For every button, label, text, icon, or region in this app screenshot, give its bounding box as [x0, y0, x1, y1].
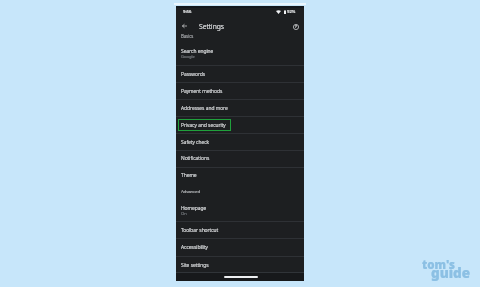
- staticText: Homepage: [181, 205, 207, 212]
- button[interactable]: Theme: [176, 167, 304, 184]
- staticText: Privacy and security: [181, 122, 226, 129]
- staticText: 92%: [287, 9, 296, 15]
- staticText: 9:56: [183, 9, 192, 15]
- staticText: Accessibility: [181, 244, 208, 251]
- staticText: tom's: [422, 257, 455, 273]
- button[interactable]: Notifications: [176, 150, 304, 167]
- staticText: Search engine: [181, 48, 214, 55]
- staticText: Google: [181, 54, 195, 60]
- button[interactable]: Payment methods: [176, 82, 304, 99]
- button[interactable]: Back: [178, 20, 190, 32]
- staticText: Basics: [181, 33, 194, 39]
- button[interactable]: Safety check: [176, 133, 304, 150]
- button[interactable]: Passwords: [176, 65, 304, 82]
- staticText: Site settings: [181, 262, 209, 269]
- button[interactable]: Site settings: [176, 256, 304, 271]
- staticText: ?: [295, 24, 297, 30]
- staticText: On: [181, 211, 187, 217]
- button[interactable]: Homepage: [176, 200, 304, 221]
- staticText: Toolbar shortcut: [181, 227, 219, 234]
- staticText: Advanced: [181, 188, 201, 194]
- button[interactable]: Addresses and more: [176, 99, 304, 116]
- staticText: Passwords: [181, 71, 206, 78]
- staticText: Notifications: [181, 155, 210, 162]
- staticText: Safety check: [181, 139, 210, 146]
- button[interactable]: Privacy and security: [176, 116, 304, 133]
- button[interactable]: Accessibility: [176, 238, 304, 256]
- button[interactable]: Toolbar shortcut: [176, 221, 304, 238]
- staticText: Theme: [181, 172, 197, 179]
- staticText: Addresses and more: [181, 105, 228, 112]
- staticText: Payment methods: [181, 88, 223, 95]
- staticText: Settings: [199, 22, 224, 31]
- button[interactable]: Help: [290, 21, 302, 33]
- staticText: guide: [431, 264, 471, 282]
- button[interactable]: Search engine: [176, 44, 304, 65]
